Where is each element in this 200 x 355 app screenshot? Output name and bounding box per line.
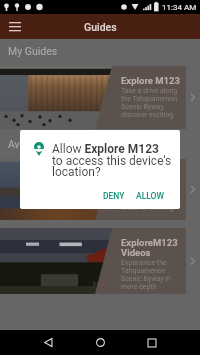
button[interactable]: ALLOW bbox=[131, 188, 169, 204]
staticText: DENY bbox=[103, 191, 125, 201]
button[interactable]: Home bbox=[87, 330, 113, 355]
button[interactable]: ExploreM123 Videos bbox=[0, 228, 186, 294]
button[interactable]: Explore M123 bbox=[0, 66, 186, 129]
button[interactable]: Back bbox=[35, 330, 61, 355]
staticText: ALLOW bbox=[136, 191, 164, 201]
button[interactable]: Explore M123 bbox=[0, 159, 186, 220]
button[interactable]: DENY bbox=[98, 188, 130, 204]
staticText: Guides bbox=[84, 21, 117, 33]
staticText: Free bbox=[93, 281, 107, 289]
staticText: Experience the Tahquamenon Scenic Byway … bbox=[121, 259, 171, 291]
staticText: Take a drive along the Tahquamenon Sceni… bbox=[121, 180, 178, 212]
staticText: ExploreM123 Videos bbox=[121, 237, 178, 258]
button[interactable]: Recent apps bbox=[139, 330, 165, 355]
staticText: Take a drive along the Tahquamenon Sceni… bbox=[121, 87, 178, 119]
staticText: Available Guides bbox=[8, 138, 86, 150]
staticText: Explore M123 bbox=[121, 75, 180, 86]
staticText: 11:34 AM bbox=[162, 3, 197, 12]
button[interactable]: Open navigation menu bbox=[0, 14, 30, 39]
staticText: Allow Explore M123 to access this device… bbox=[52, 142, 172, 179]
staticText: My Guides bbox=[8, 45, 58, 57]
staticText: Free bbox=[93, 207, 107, 215]
